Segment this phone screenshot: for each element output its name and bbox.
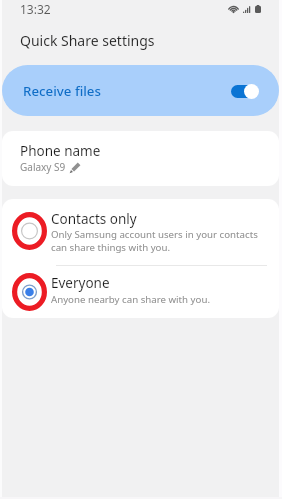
- staticText: Everyone: [51, 274, 110, 292]
- staticText: 13:32: [20, 1, 51, 17]
- staticText: Contacts only: [51, 210, 137, 228]
- other: Everyone selected: [12, 273, 47, 311]
- staticText: Phone name: [20, 142, 101, 160]
- button[interactable]: Phone name: [2, 131, 279, 186]
- button[interactable]: Contacts only: [2, 199, 279, 265]
- staticText: Quick Share settings: [20, 31, 155, 50]
- other: Contacts only: [12, 212, 47, 250]
- button[interactable]: Receive files: [2, 65, 279, 116]
- button[interactable]: Everyone selected: [2, 266, 279, 318]
- staticText: Receive files: [23, 82, 101, 100]
- staticText: Only Samsung account users in your conta…: [51, 228, 258, 254]
- staticText: Galaxy S9: [20, 160, 66, 174]
- staticText: Anyone nearby can share with you.: [51, 293, 210, 306]
- button[interactable]: Receive files toggle: [231, 83, 258, 99]
